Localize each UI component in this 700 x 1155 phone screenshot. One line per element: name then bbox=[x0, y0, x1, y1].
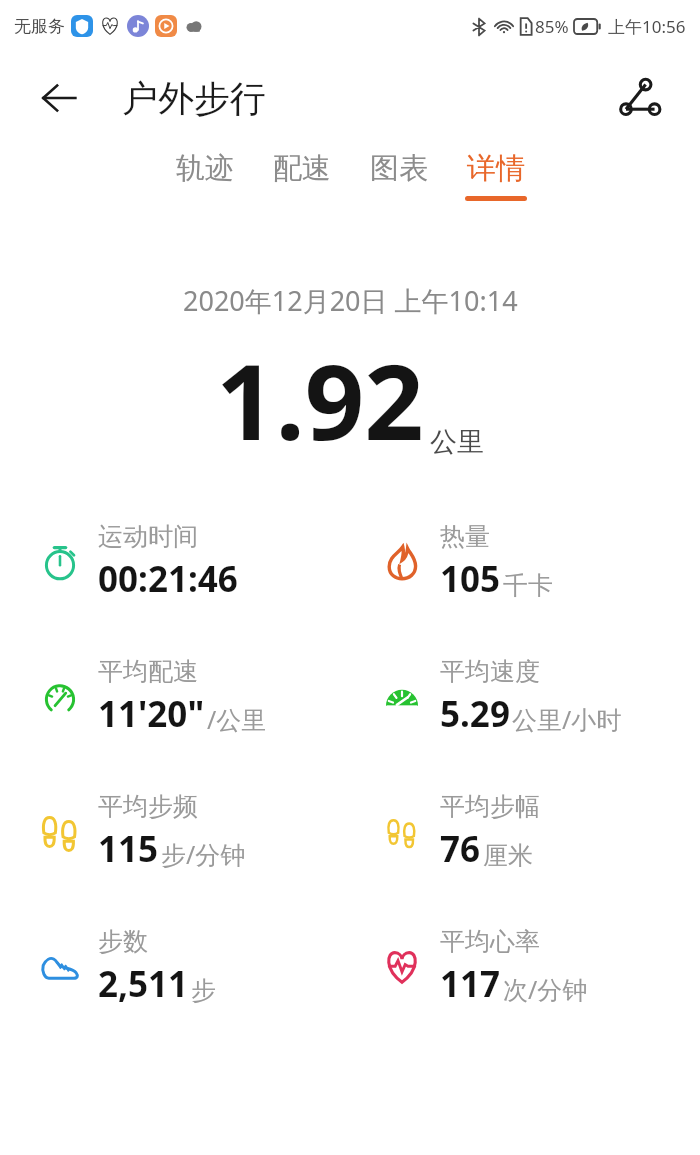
button[interactable]: 热量 bbox=[380, 519, 700, 605]
staticText: 11'20" bbox=[98, 690, 205, 738]
button[interactable]: 平均步幅 bbox=[380, 789, 700, 875]
button[interactable]: Back bbox=[36, 74, 84, 122]
button[interactable]: 平均配速 bbox=[38, 654, 350, 740]
button[interactable]: 配速 bbox=[253, 144, 350, 196]
button[interactable]: 运动时间 bbox=[38, 519, 350, 605]
staticText: 117 bbox=[440, 960, 501, 1008]
staticText: 2,511 bbox=[98, 960, 189, 1008]
button[interactable]: 详情 bbox=[447, 144, 544, 201]
staticText: 图表 bbox=[370, 150, 428, 187]
staticText: 平均步幅 bbox=[440, 791, 540, 822]
staticText: 步数 bbox=[98, 926, 148, 957]
staticText: 上午10:56 bbox=[608, 15, 686, 38]
staticText: 5.29 bbox=[440, 690, 510, 738]
button[interactable]: 步数 bbox=[38, 924, 350, 1010]
staticText: 平均配速 bbox=[98, 656, 198, 687]
staticText: 76 bbox=[440, 825, 481, 873]
staticText: 厘米 bbox=[483, 840, 533, 871]
staticText: /公里 bbox=[207, 702, 267, 736]
staticText: 详情 bbox=[467, 150, 525, 187]
staticText: 公里/小时 bbox=[512, 702, 622, 736]
staticText: 公里 bbox=[430, 425, 484, 459]
staticText: 115 bbox=[98, 825, 159, 873]
button[interactable]: 图表 bbox=[350, 144, 447, 196]
staticText: 热量 bbox=[440, 521, 490, 552]
button[interactable]: 平均速度 bbox=[380, 654, 700, 740]
staticText: 次/分钟 bbox=[503, 972, 588, 1006]
staticText: 千卡 bbox=[503, 570, 553, 601]
staticText: 无服务 bbox=[14, 16, 65, 37]
staticText: 85% bbox=[535, 15, 569, 38]
staticText: 1.92 bbox=[216, 329, 424, 471]
staticText: 平均速度 bbox=[440, 656, 540, 687]
button[interactable]: 平均步频 bbox=[38, 789, 350, 875]
button[interactable]: 轨迹 bbox=[156, 144, 253, 196]
staticText: 105 bbox=[440, 555, 501, 603]
staticText: 步/分钟 bbox=[161, 837, 246, 871]
staticText: 运动时间 bbox=[98, 521, 198, 552]
staticText: 2020年12月20日 上午10:14 bbox=[183, 282, 518, 319]
staticText: 步 bbox=[191, 975, 216, 1006]
button[interactable]: 平均心率 bbox=[380, 924, 700, 1010]
staticText: 00:21:46 bbox=[98, 555, 238, 603]
button[interactable]: Share bbox=[612, 70, 668, 126]
staticText: 户外步行 bbox=[122, 76, 266, 121]
staticText: 轨迹 bbox=[176, 150, 234, 187]
staticText: 平均心率 bbox=[440, 926, 540, 957]
staticText: 平均步频 bbox=[98, 791, 198, 822]
staticText: 配速 bbox=[273, 150, 331, 187]
